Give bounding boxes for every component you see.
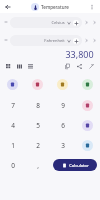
- button[interactable]: History: [87, 62, 96, 71]
- button[interactable]: Columns: [15, 62, 24, 71]
- button[interactable]: 4: [0, 115, 25, 135]
- button[interactable]: Copy: [63, 62, 72, 71]
- button[interactable]: 2: [25, 135, 50, 155]
- staticText: 4: [11, 121, 15, 130]
- button[interactable]: Calculator: [53, 159, 97, 171]
- button[interactable]: 5: [25, 115, 50, 135]
- button[interactable]: Add: [73, 20, 79, 26]
- staticText: Celsius: [51, 20, 65, 25]
- button[interactable]: Celsius: [10, 17, 82, 28]
- staticText: 5: [36, 121, 40, 130]
- staticText: 33,800: [65, 48, 94, 60]
- button[interactable]: Expand: [90, 36, 98, 44]
- button[interactable]: 7: [0, 95, 25, 115]
- staticText: 0: [11, 161, 15, 170]
- button[interactable]: Next unit: [82, 18, 90, 26]
- button[interactable]: Previous unit: [2, 18, 10, 26]
- staticText: ,: [37, 161, 39, 170]
- button[interactable]: List view: [26, 62, 35, 71]
- staticText: 3: [61, 141, 65, 150]
- button[interactable]: 8: [25, 95, 50, 115]
- button[interactable]: Length: [0, 75, 25, 93]
- staticText: 2: [36, 141, 40, 150]
- staticText: Calculator: [69, 163, 89, 168]
- button[interactable]: More options: [87, 2, 97, 12]
- button[interactable]: ,: [25, 155, 50, 175]
- button[interactable]: Action 2: [75, 135, 100, 155]
- button[interactable]: 0: [0, 155, 25, 175]
- button[interactable]: Action 0: [75, 95, 100, 115]
- button[interactable]: Action 1: [75, 115, 100, 135]
- button[interactable]: Expand: [90, 18, 98, 26]
- button[interactable]: Add: [73, 38, 79, 44]
- button[interactable]: Previous unit: [2, 36, 10, 44]
- button[interactable]: Area: [50, 75, 75, 93]
- button[interactable]: 6: [50, 115, 75, 135]
- button[interactable]: Grid view: [4, 62, 13, 71]
- button[interactable]: Back: [3, 2, 13, 12]
- button[interactable]: Temperature: [30, 2, 70, 12]
- staticText: 6: [61, 121, 65, 130]
- button[interactable]: 9: [50, 95, 75, 115]
- staticText: 1: [11, 141, 15, 150]
- button[interactable]: Next unit: [82, 36, 90, 44]
- staticText: 7: [11, 101, 15, 110]
- button[interactable]: 1: [0, 135, 25, 155]
- button[interactable]: Volume: [75, 75, 100, 93]
- button[interactable]: Weight: [25, 75, 50, 93]
- button[interactable]: 3: [50, 135, 75, 155]
- staticText: 9: [61, 101, 65, 110]
- staticText: Temperature: [41, 4, 69, 10]
- button[interactable]: Fahrenheit: [10, 35, 82, 46]
- staticText: Fahrenheit: [44, 38, 65, 43]
- button[interactable]: Share: [75, 62, 84, 71]
- staticText: 8: [36, 101, 40, 110]
